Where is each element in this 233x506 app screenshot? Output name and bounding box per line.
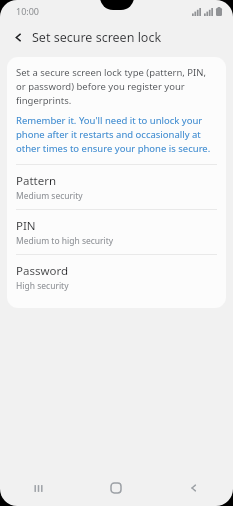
- button[interactable]: Recent apps: [0, 470, 77, 506]
- staticText: Medium to high security: [16, 235, 114, 247]
- staticText: Remember it. You'll need it to unlock yo…: [16, 114, 217, 155]
- staticText: 10:00: [16, 5, 40, 17]
- staticText: Medium security: [16, 190, 83, 202]
- staticText: PIN: [16, 218, 36, 234]
- button[interactable]: Back: [155, 470, 233, 506]
- staticText: Set a secure screen lock type (pattern, …: [16, 66, 217, 107]
- staticText: Pattern: [16, 173, 57, 189]
- staticText: Set secure screen lock: [32, 29, 162, 46]
- button[interactable]: Password: [7, 255, 226, 299]
- button[interactable]: Navigate up: [7, 26, 29, 48]
- button[interactable]: Pattern: [7, 165, 226, 209]
- button[interactable]: Home: [77, 470, 155, 506]
- button[interactable]: PIN: [7, 210, 226, 254]
- staticText: Password: [16, 263, 69, 279]
- staticText: High security: [16, 280, 69, 292]
